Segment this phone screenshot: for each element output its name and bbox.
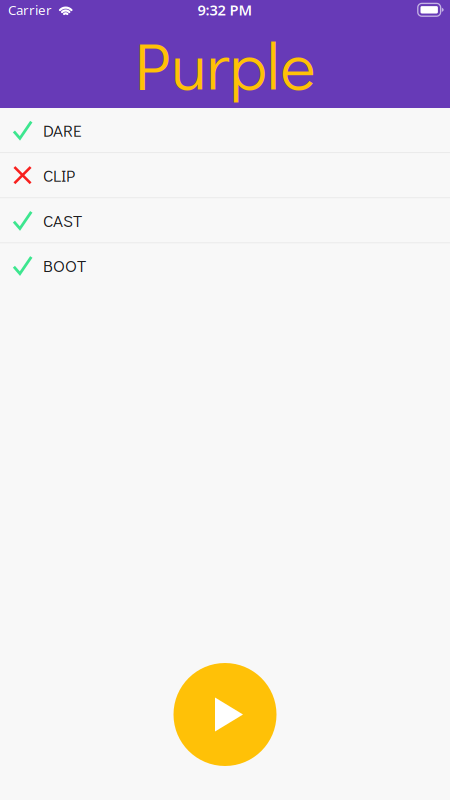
staticText: CLIP <box>43 164 75 186</box>
button[interactable]: BOOT <box>0 243 450 287</box>
staticText: Carrier <box>8 1 52 19</box>
staticText: CAST <box>43 209 82 231</box>
staticText: Purple <box>134 20 315 107</box>
staticText: BOOT <box>43 254 86 277</box>
button[interactable]: Play <box>173 663 276 766</box>
staticText: DARE <box>43 119 82 141</box>
button[interactable]: CLIP <box>0 153 450 197</box>
button[interactable]: CAST <box>0 198 450 242</box>
staticText: 9:32 PM <box>197 0 252 20</box>
button[interactable]: DARE <box>0 108 450 152</box>
